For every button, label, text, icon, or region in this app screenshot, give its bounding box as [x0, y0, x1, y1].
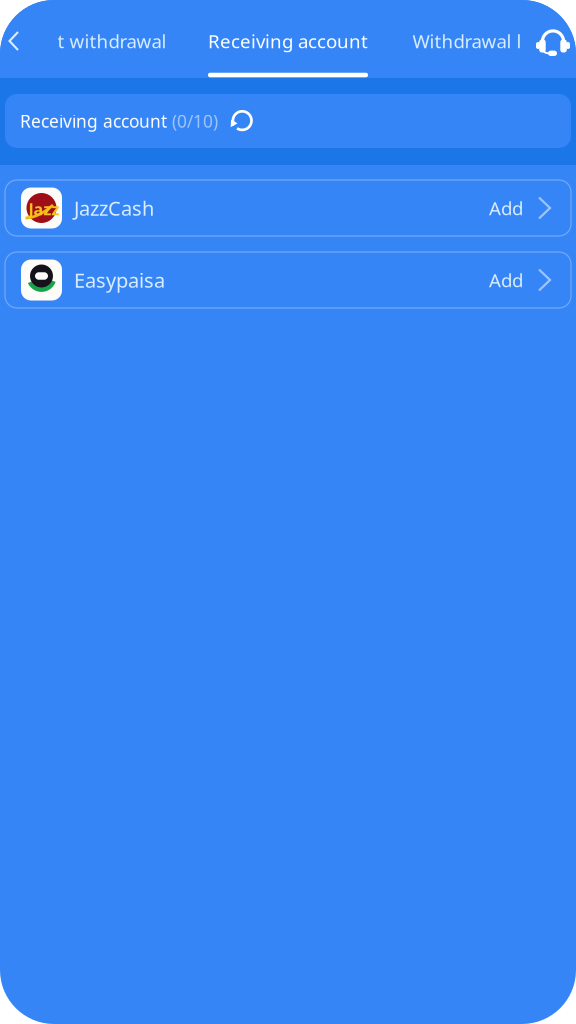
- button[interactable]: t withdrawal: [57, 29, 166, 53]
- button[interactable]: Jazz: [5, 180, 571, 236]
- button[interactable]: Refresh: [218, 106, 257, 136]
- staticText: JazzCash: [74, 195, 154, 221]
- staticText: Add: [489, 268, 523, 292]
- staticText: Easypaisa: [74, 267, 165, 293]
- staticText: t withdrawal: [57, 29, 166, 53]
- staticText: Withdrawal l: [412, 29, 521, 53]
- staticText: (0/10): [167, 109, 218, 132]
- button[interactable]: Withdrawal l: [412, 29, 521, 53]
- button[interactable]: Customer service: [536, 25, 570, 57]
- button[interactable]: Back: [5, 25, 23, 57]
- staticText: Receiving account: [208, 29, 368, 53]
- button[interactable]: Easypaisa: [5, 252, 571, 308]
- button[interactable]: Receiving account: [208, 29, 368, 53]
- staticText: Add: [489, 196, 523, 220]
- staticText: Jazz: [28, 198, 59, 220]
- staticText: Receiving account: [20, 109, 167, 132]
